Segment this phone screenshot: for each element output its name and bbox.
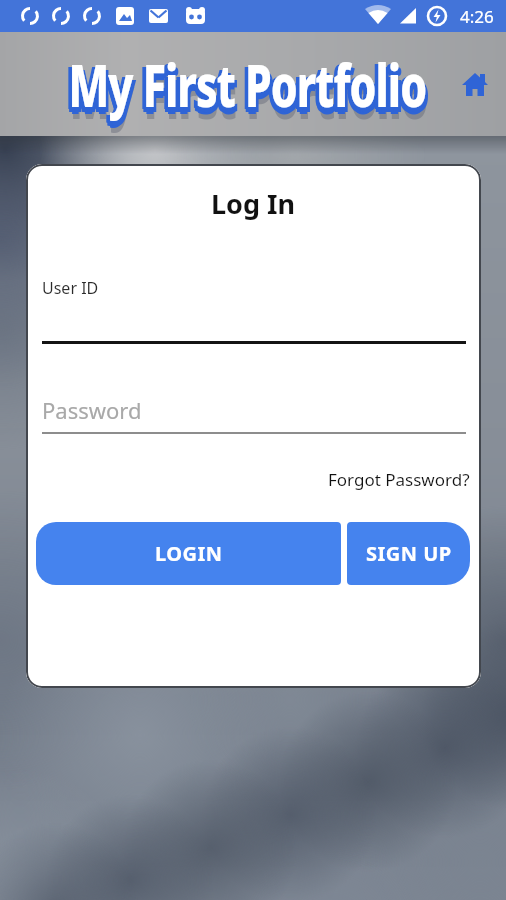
button[interactable] — [42, 382, 466, 436]
button[interactable]: LOGIN — [36, 522, 341, 585]
button[interactable]: SIGN UP — [347, 522, 470, 585]
staticText: SIGN UP — [366, 540, 452, 567]
staticText: My First Portfolio — [66, 50, 424, 129]
staticText: Log In — [211, 185, 296, 222]
staticText: My First Portfolio — [69, 57, 428, 136]
staticText: LOGIN — [155, 540, 223, 567]
staticText: User ID — [42, 277, 99, 299]
staticText: My First Portfolio — [68, 45, 427, 124]
staticText: My First Portfolio — [71, 50, 429, 129]
staticText: 4:26 — [460, 5, 494, 28]
staticText: My First Portfolio — [68, 51, 427, 131]
button[interactable] — [42, 264, 466, 346]
staticText: Password — [42, 395, 142, 425]
button[interactable] — [460, 69, 490, 99]
button[interactable]: Forgot Password? — [328, 468, 470, 491]
staticText: My First Portfolio — [65, 46, 423, 125]
